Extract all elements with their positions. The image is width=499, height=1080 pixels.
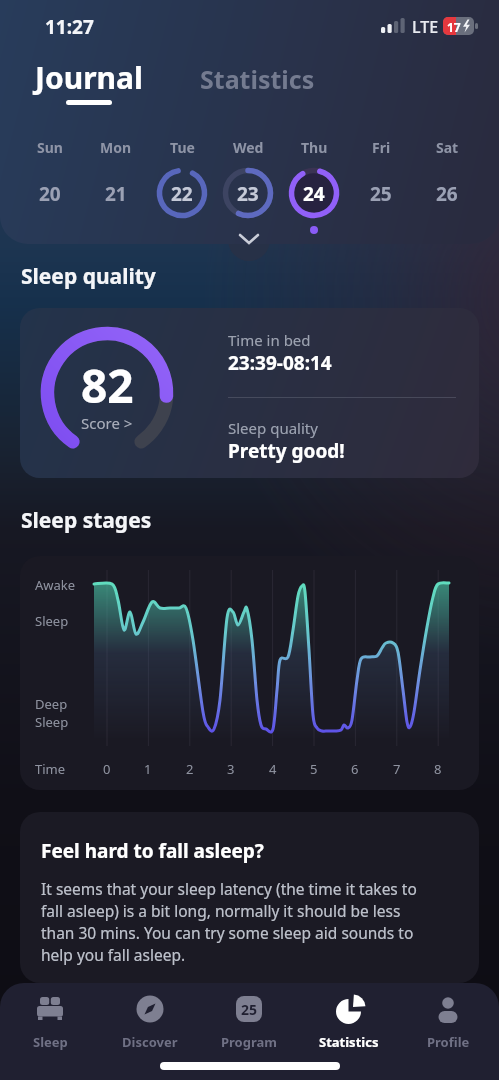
staticText: 6 (351, 760, 359, 778)
staticText: 5 (310, 760, 318, 778)
staticText: Time in bed (228, 330, 311, 350)
staticText: Statistics (319, 1033, 379, 1051)
staticText: Mon (100, 138, 132, 157)
staticText: 11:27 (45, 14, 94, 40)
staticText: Program (221, 1033, 277, 1051)
staticText: 23:39-08:14 (228, 350, 332, 376)
staticText: It seems that your sleep latency (the ti… (41, 878, 417, 899)
staticText: than 30 mins. You can try some sleep aid… (41, 922, 414, 943)
button[interactable]: Thu (281, 134, 347, 238)
staticText: 1 (144, 760, 152, 778)
staticText: 21 (105, 181, 127, 207)
staticText: Sleep (33, 1033, 68, 1051)
staticText: LTE (412, 16, 439, 38)
staticText: Pretty good! (228, 438, 345, 464)
staticText: 23 (237, 181, 259, 207)
staticText: Fri (372, 138, 391, 157)
button[interactable]: Sleep (5, 995, 95, 1065)
staticText: Sleep (35, 713, 69, 731)
staticText: 82 (81, 354, 134, 417)
button[interactable]: Discover (105, 995, 195, 1065)
button[interactable]: Tue (149, 134, 215, 238)
staticText: 0 (103, 760, 111, 778)
staticText: Sat (436, 138, 459, 157)
button[interactable]: Sun (17, 134, 83, 238)
button[interactable]: Sat (414, 134, 480, 238)
staticText: help you fall asleep. (41, 944, 186, 965)
button[interactable]: Fri (348, 134, 414, 238)
staticText: Score > (81, 413, 133, 433)
button[interactable]: Journal (30, 55, 155, 110)
staticText: 2 (186, 760, 194, 778)
button[interactable]: 82 (20, 308, 479, 478)
staticText: Time (35, 760, 66, 778)
staticText: 26 (436, 181, 458, 207)
staticText: Awake (35, 576, 76, 594)
staticText: Sleep stages (21, 506, 152, 535)
staticText: fall asleep) is a bit long, normally it … (41, 900, 401, 921)
staticText: Journal (35, 57, 143, 98)
staticText: Sleep quality (228, 418, 318, 438)
button[interactable]: Statistics (304, 995, 394, 1065)
staticText: Statistics (200, 62, 315, 96)
staticText: Deep (35, 695, 68, 713)
button[interactable]: Feel hard to fall asleep? (20, 812, 479, 983)
button[interactable] (238, 232, 260, 248)
staticText: 22 (171, 181, 193, 207)
staticText: 25 (370, 181, 392, 207)
button[interactable]: Profile (403, 995, 493, 1065)
staticText: 20 (39, 181, 61, 207)
staticText: Sun (37, 138, 63, 157)
button[interactable]: Mon (83, 134, 149, 238)
staticText: Discover (122, 1033, 178, 1051)
staticText: Thu (301, 138, 328, 157)
button[interactable]: 25 (204, 995, 294, 1065)
staticText: Profile (427, 1033, 470, 1051)
staticText: 25 (241, 1000, 258, 1019)
staticText: 3 (227, 760, 235, 778)
staticText: 8 (434, 760, 442, 778)
staticText: Wed (233, 138, 264, 157)
staticText: Sleep (35, 612, 69, 630)
staticText: 24 (303, 181, 325, 207)
button[interactable]: Wed (215, 134, 281, 238)
staticText: Tue (170, 138, 195, 157)
staticText: 7 (393, 760, 401, 778)
staticText: Feel hard to fall asleep? (41, 838, 264, 864)
staticText: 17 (447, 19, 461, 35)
staticText: Sleep quality (21, 262, 156, 291)
staticText: 4 (269, 760, 277, 778)
button[interactable]: Statistics (195, 60, 320, 105)
